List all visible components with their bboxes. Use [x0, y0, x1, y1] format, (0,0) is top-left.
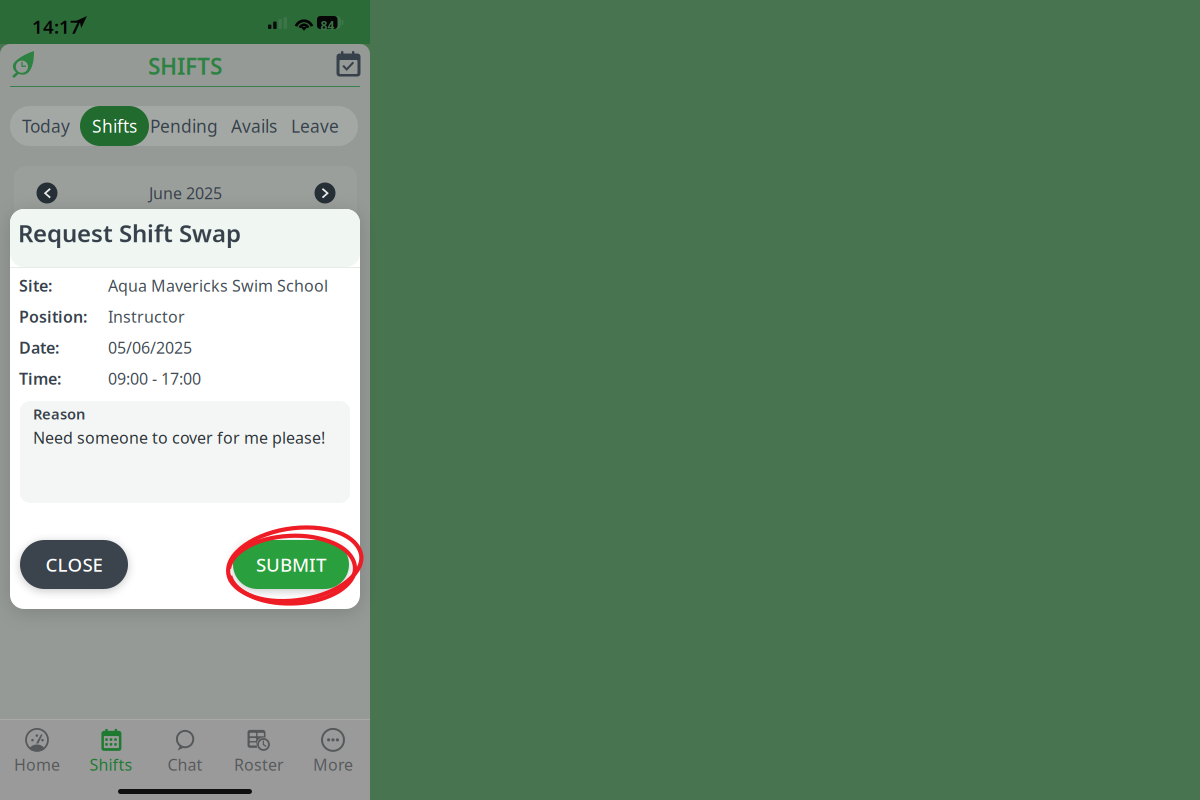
button[interactable]: Shifts [74, 724, 148, 780]
staticText: 09:00 - 17:00 [108, 368, 201, 389]
staticText: Today [22, 114, 70, 137]
button[interactable]: Home [0, 724, 74, 780]
staticText: Leave [291, 114, 339, 137]
staticText: Chat [167, 754, 202, 775]
staticText: Aqua Mavericks Swim School [108, 275, 328, 296]
staticText: SHIFTS [148, 51, 222, 81]
button[interactable]: Leave [284, 106, 346, 146]
staticText: 14:17 [32, 14, 81, 39]
button[interactable]: Shifts [80, 106, 149, 146]
staticText: Date: [19, 337, 59, 358]
staticText: Home [14, 754, 60, 775]
button[interactable]: Avails [223, 106, 285, 146]
button[interactable]: Pending [146, 106, 222, 146]
staticText: Site: [19, 275, 52, 296]
button[interactable]: Today [11, 106, 81, 146]
staticText: June 2025 [149, 182, 222, 204]
button[interactable]: More [296, 724, 370, 780]
button[interactable]: Home [10, 50, 40, 80]
button[interactable]: Calendar [334, 50, 364, 80]
staticText: Shifts [89, 754, 132, 775]
staticText: Roster [234, 754, 284, 775]
staticText: Pending [150, 114, 218, 137]
staticText: Time: [19, 368, 61, 389]
staticText: Request Shift Swap [18, 217, 241, 249]
staticText: 05/06/2025 [108, 337, 192, 358]
button[interactable]: Chat [148, 724, 222, 780]
staticText: Avails [231, 114, 277, 137]
button[interactable]: CLOSE [20, 540, 128, 589]
staticText: Reason [33, 404, 85, 423]
button[interactable]: SUBMIT [233, 540, 349, 589]
staticText: Shifts [92, 114, 137, 137]
staticText: More [313, 754, 353, 775]
staticText: CLOSE [45, 552, 102, 577]
button[interactable]: Next month [314, 182, 336, 204]
staticText: Instructor [108, 306, 185, 327]
staticText: Need someone to cover for me please! [33, 427, 325, 448]
staticText: 84 [321, 17, 335, 33]
staticText: SUBMIT [256, 552, 326, 577]
button[interactable]: Roster [222, 724, 296, 780]
button[interactable]: Previous month [36, 182, 58, 204]
staticText: Position: [19, 306, 87, 327]
